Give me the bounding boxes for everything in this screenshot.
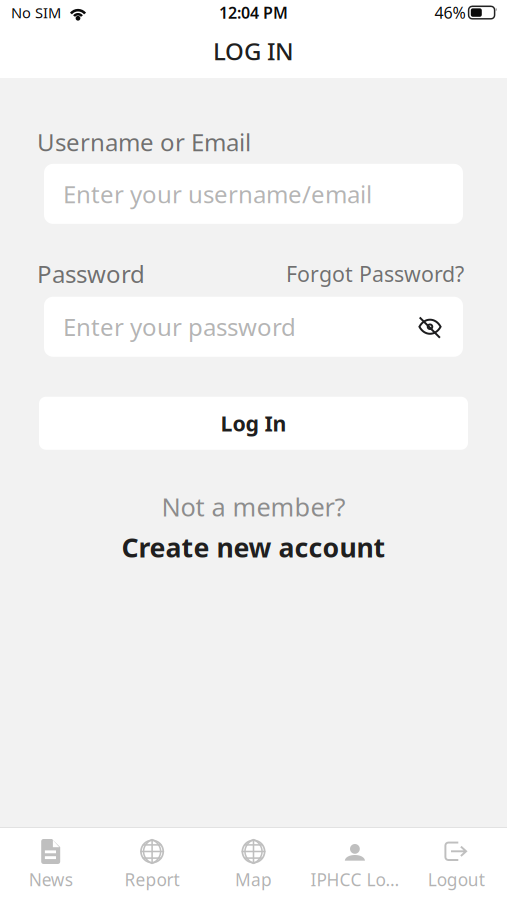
staticText: Forgot Password?	[286, 260, 464, 288]
button[interactable]: Log In	[39, 397, 468, 450]
staticText: Logout	[428, 868, 485, 891]
staticText: LOG IN	[213, 35, 294, 67]
staticText: Password	[37, 258, 145, 290]
button[interactable]: IPHCC Lo…	[304, 826, 406, 900]
button[interactable]: Show password	[416, 313, 444, 341]
button[interactable]: News	[0, 826, 101, 900]
staticText: Enter your password	[63, 311, 296, 343]
staticText: News	[29, 868, 73, 891]
staticText: Enter your username/email	[63, 178, 372, 210]
staticText: 46%	[435, 2, 466, 23]
staticText: No SIM	[11, 3, 61, 22]
staticText: Create new account	[121, 529, 385, 565]
button[interactable]: Report	[101, 826, 203, 900]
staticText: Log In	[220, 409, 286, 437]
staticText: Not a member?	[161, 490, 345, 523]
staticText: Report	[125, 868, 180, 891]
staticText: Map	[235, 868, 272, 891]
button[interactable]: Map	[203, 826, 304, 900]
button[interactable]: Create new account	[121, 529, 385, 565]
button[interactable]: Logout	[406, 826, 507, 900]
staticText: IPHCC Lo…	[310, 868, 399, 891]
staticText: 12:04 PM	[219, 2, 288, 23]
button[interactable]: Forgot Password?	[286, 260, 464, 288]
staticText: Username or Email	[37, 126, 251, 158]
